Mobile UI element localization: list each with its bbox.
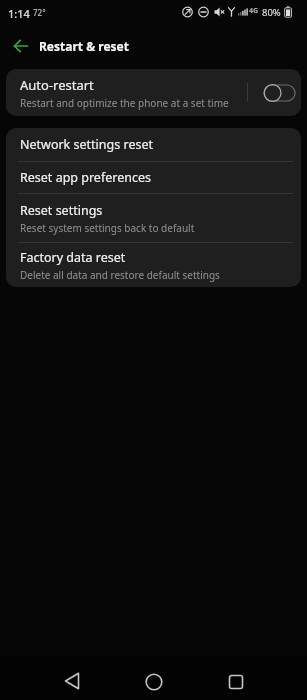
staticText: Factory data reset — [20, 249, 126, 266]
staticText: Delete all data and restore default sett… — [20, 268, 220, 282]
staticText: Reset settings — [20, 202, 103, 219]
button[interactable]: Auto-restart — [6, 69, 301, 116]
staticText: Auto-restart — [20, 76, 94, 94]
button[interactable] — [56, 665, 88, 697]
staticText: 4G — [249, 6, 259, 16]
button[interactable] — [138, 666, 170, 698]
button[interactable]: Reset app preferences — [6, 162, 301, 193]
staticText: Reset system settings back to default — [20, 221, 195, 235]
staticText: 1:14 — [8, 6, 30, 21]
staticText: Restart and optimize the phone at a set … — [20, 96, 229, 110]
staticText: Network settings reset — [20, 136, 153, 153]
staticText: Restart & reset — [39, 38, 129, 54]
button[interactable] — [220, 666, 252, 698]
button[interactable]: Factory data reset — [6, 243, 301, 287]
button[interactable]: Reset settings — [6, 194, 301, 242]
button[interactable]: Network settings reset — [6, 128, 301, 161]
button[interactable] — [256, 81, 296, 105]
staticText: Reset app preferences — [20, 169, 151, 186]
staticText: 72° — [33, 7, 46, 18]
button[interactable] — [8, 33, 34, 59]
staticText: 80% — [262, 6, 281, 19]
